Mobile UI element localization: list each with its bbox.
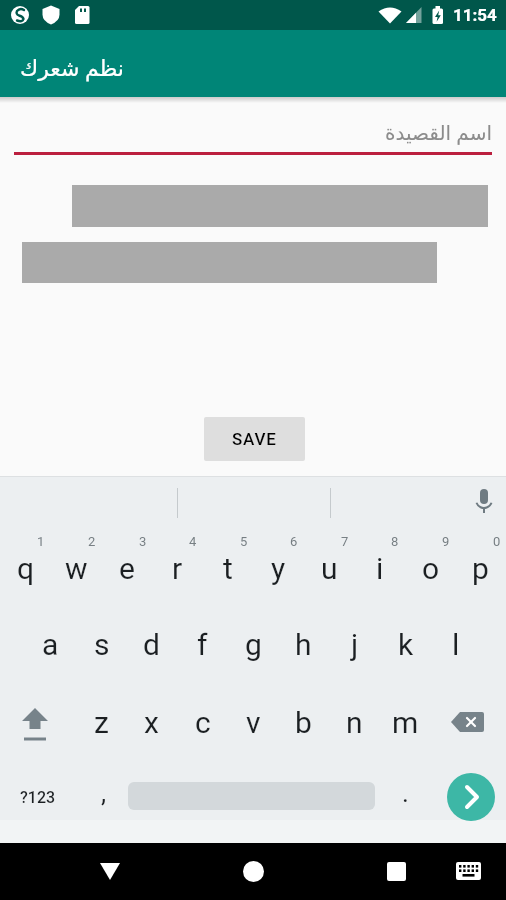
staticText: u xyxy=(321,551,338,586)
button[interactable]: a xyxy=(25,613,76,675)
button[interactable]: w xyxy=(51,537,102,599)
staticText: 4 xyxy=(189,534,197,549)
staticText: r xyxy=(172,551,183,586)
staticText: i xyxy=(376,551,384,586)
staticText: h xyxy=(295,627,312,662)
staticText: 7 xyxy=(341,534,349,549)
staticText: b xyxy=(295,705,312,740)
staticText: . xyxy=(402,778,409,808)
staticText: n xyxy=(346,705,363,740)
button[interactable]: g xyxy=(228,613,279,675)
staticText: c xyxy=(195,705,211,740)
button[interactable]: q xyxy=(0,537,51,599)
staticText: 2 xyxy=(88,534,96,549)
button[interactable] xyxy=(456,843,482,900)
staticText: k xyxy=(398,627,414,662)
button[interactable] xyxy=(472,488,496,520)
button[interactable]: v xyxy=(228,691,279,753)
button[interactable] xyxy=(18,701,52,741)
staticText: m xyxy=(392,705,419,740)
staticText: 0 xyxy=(493,534,501,549)
button[interactable]: b xyxy=(278,691,329,753)
button[interactable]: t xyxy=(202,537,253,599)
button[interactable]: u xyxy=(304,537,355,599)
button[interactable]: z xyxy=(76,691,127,753)
button[interactable]: h xyxy=(278,613,329,675)
button[interactable]: e xyxy=(101,537,152,599)
button[interactable]: s xyxy=(76,613,127,675)
button[interactable] xyxy=(229,847,277,895)
button[interactable]: o xyxy=(405,537,456,599)
button[interactable]: x xyxy=(126,691,177,753)
staticText: v xyxy=(246,705,261,740)
button[interactable]: f xyxy=(177,613,228,675)
staticText: اسم القصيدة xyxy=(385,119,492,146)
staticText: 8 xyxy=(391,534,399,549)
button[interactable]: l xyxy=(430,613,481,675)
staticText: SAVE xyxy=(232,429,277,449)
button[interactable]: n xyxy=(329,691,380,753)
staticText: y xyxy=(271,551,286,586)
button[interactable]: y xyxy=(253,537,304,599)
button[interactable] xyxy=(450,710,486,734)
button[interactable]: SAVE xyxy=(204,417,305,461)
staticText: g xyxy=(245,627,262,662)
staticText: l xyxy=(452,627,460,662)
button[interactable] xyxy=(372,847,420,895)
staticText: 5 xyxy=(240,534,248,549)
button[interactable] xyxy=(447,773,495,821)
staticText: z xyxy=(94,705,109,740)
staticText: , xyxy=(101,778,107,808)
button[interactable]: c xyxy=(177,691,228,753)
staticText: j xyxy=(351,627,359,662)
staticText: q xyxy=(17,551,35,586)
button[interactable]: i xyxy=(354,537,405,599)
button[interactable]: r xyxy=(152,537,203,599)
button[interactable]: m xyxy=(380,691,431,753)
button[interactable]: j xyxy=(329,613,380,675)
staticText: 3 xyxy=(139,534,147,549)
staticText: o xyxy=(422,551,440,586)
staticText: t xyxy=(223,551,233,586)
staticText: ?123 xyxy=(20,788,56,807)
staticText: 9 xyxy=(442,534,450,549)
button[interactable]: p xyxy=(455,537,506,599)
staticText: x xyxy=(144,705,159,740)
button[interactable]: d xyxy=(126,613,177,675)
staticText: d xyxy=(143,627,160,662)
button[interactable]: k xyxy=(380,613,431,675)
button[interactable] xyxy=(86,847,134,895)
staticText: 6 xyxy=(290,534,298,549)
staticText: f xyxy=(197,627,208,662)
staticText: a xyxy=(42,627,59,662)
staticText: p xyxy=(472,551,489,586)
staticText: w xyxy=(65,551,88,586)
staticText: 1 xyxy=(37,534,45,549)
staticText: 11:54 xyxy=(453,5,497,25)
staticText: نظم شعرك xyxy=(20,52,124,82)
staticText: e xyxy=(119,551,135,586)
staticText: s xyxy=(94,627,110,662)
